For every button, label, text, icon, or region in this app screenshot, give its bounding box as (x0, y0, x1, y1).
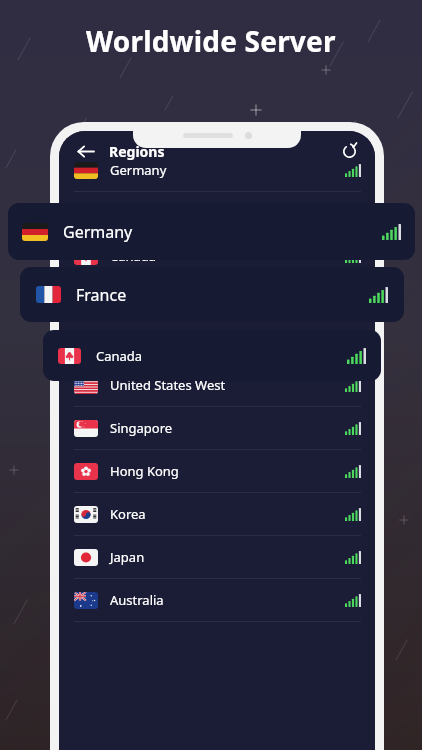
staticText: Regions (109, 142, 165, 161)
button[interactable]: Korea (59, 493, 375, 536)
staticText: Germany (63, 221, 133, 243)
button[interactable]: France (20, 267, 404, 322)
button[interactable]: Netherlands (59, 278, 375, 321)
staticText: Japan (110, 548, 145, 566)
button[interactable]: United States West (59, 364, 375, 407)
button[interactable]: France (59, 192, 375, 235)
button[interactable]: Hong Kong (59, 450, 375, 493)
staticText: Germany (110, 161, 167, 179)
button[interactable]: Refresh (335, 137, 363, 165)
staticText: France (76, 284, 127, 306)
button[interactable]: Australia (59, 579, 375, 622)
button[interactable]: Canada (43, 330, 381, 381)
staticText: Netherlands (110, 290, 186, 308)
staticText: Canada (96, 347, 143, 365)
staticText: VPN (88, 145, 111, 160)
button[interactable]: Japan (59, 536, 375, 579)
button[interactable]: Back (71, 137, 99, 165)
staticText: United States West (110, 376, 226, 394)
button[interactable]: Germany (8, 203, 415, 260)
button[interactable]: Canada (59, 235, 375, 278)
staticText: Korea (110, 505, 146, 523)
button[interactable]: United States East (59, 321, 375, 364)
staticText: Singapore (110, 419, 173, 437)
staticText: Australia (110, 591, 164, 609)
button[interactable]: Singapore (59, 407, 375, 450)
staticText: Hong Kong (110, 462, 179, 480)
button[interactable]: Germany (59, 149, 375, 192)
staticText: Worldwide Server (86, 22, 336, 60)
staticText: Canada (110, 247, 157, 265)
